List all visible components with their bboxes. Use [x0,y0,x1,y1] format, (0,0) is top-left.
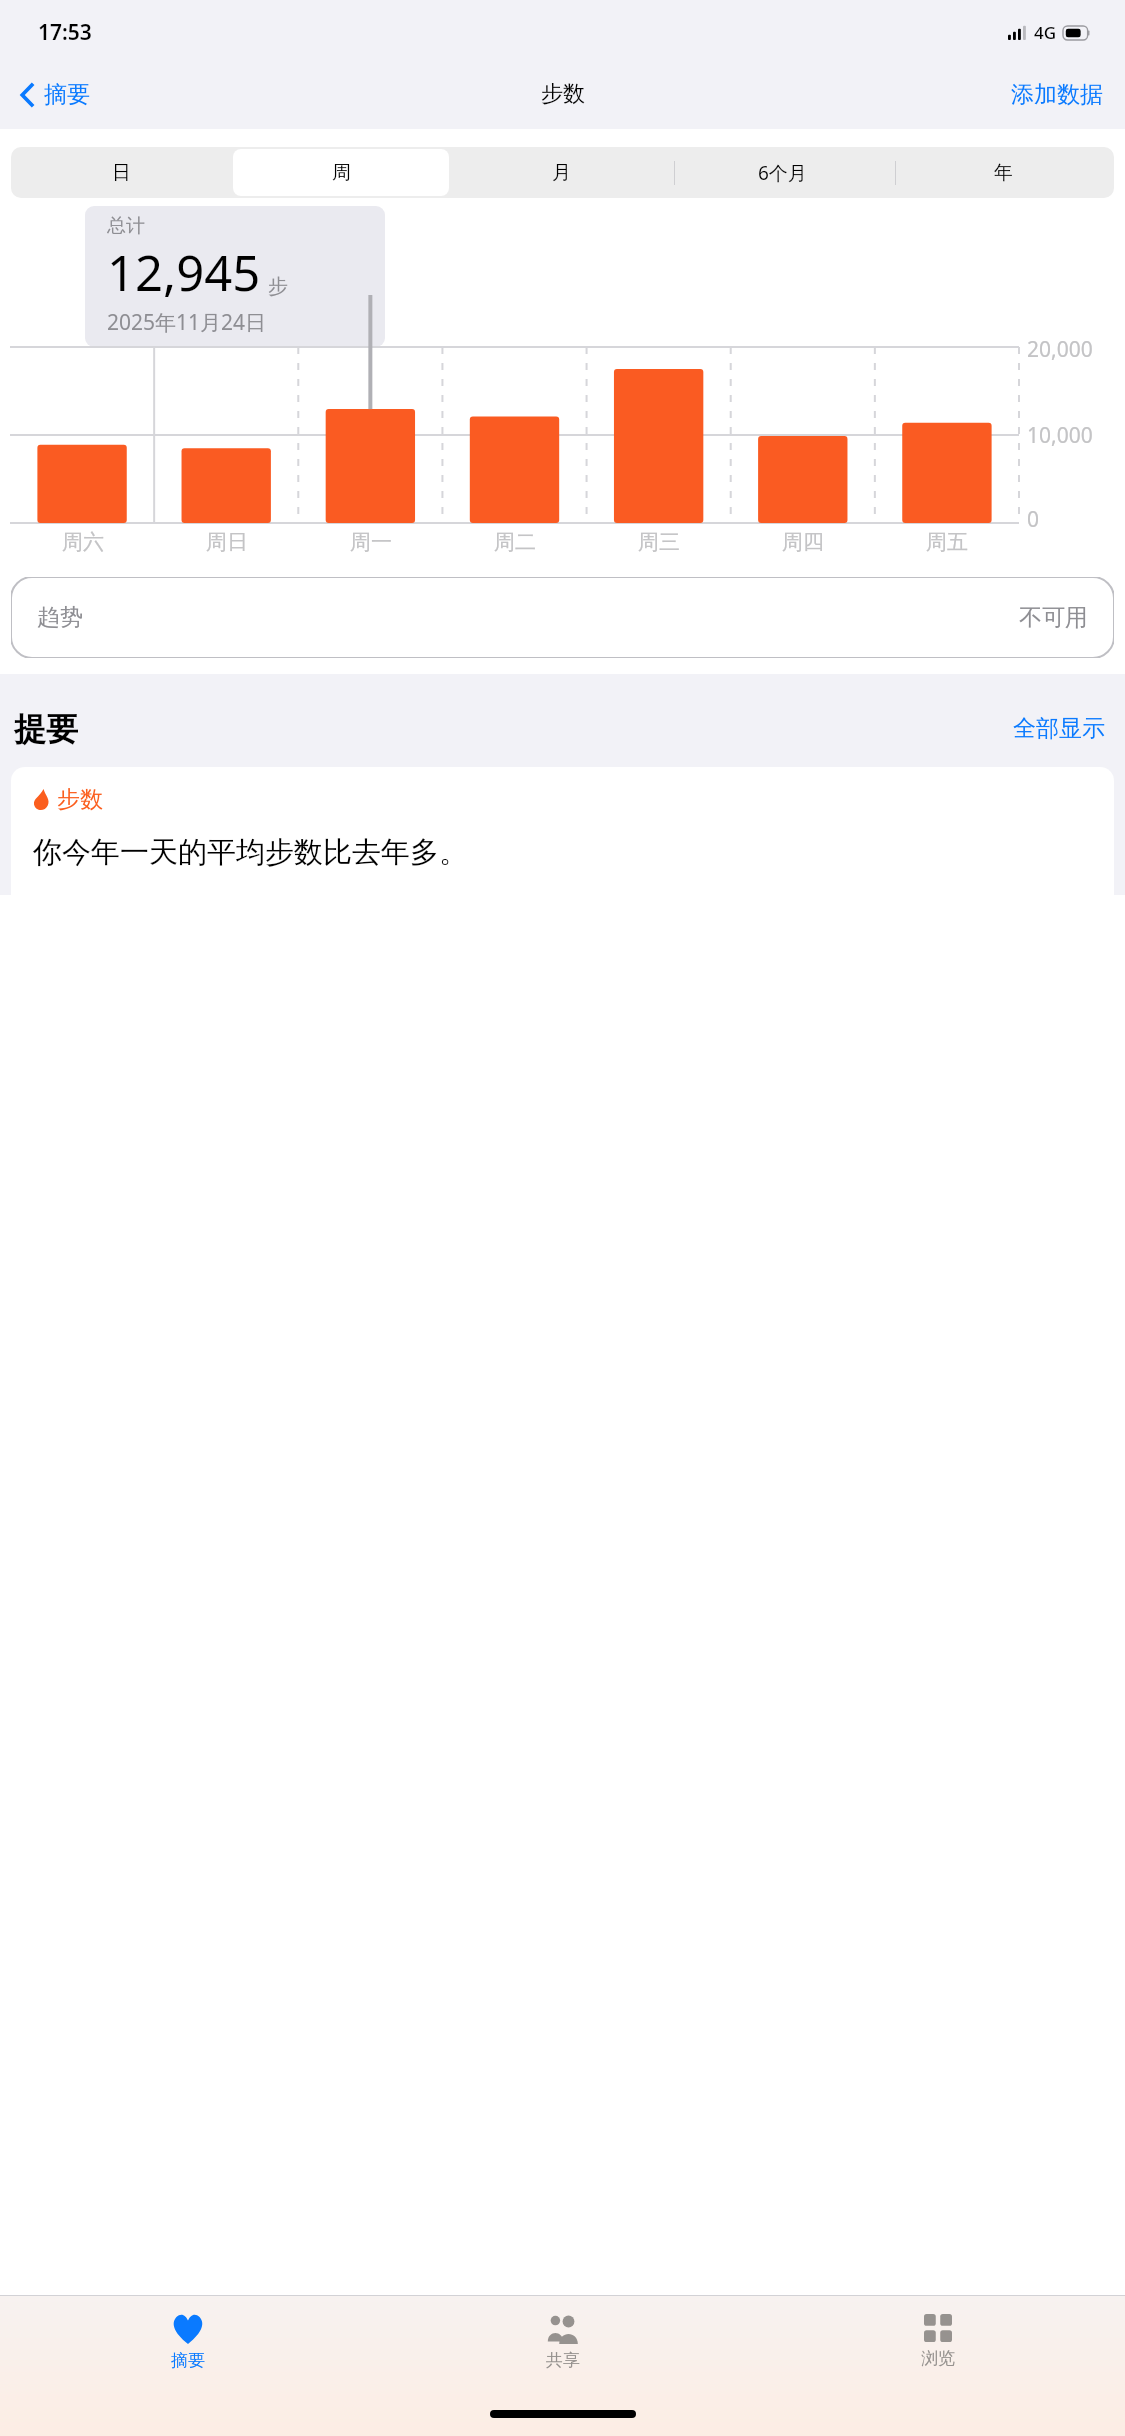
staticText: 周 [332,161,351,185]
staticText: 周三 [638,529,680,555]
button[interactable]: 趋势 [11,577,1114,658]
staticText: 20,000 [1027,335,1093,364]
staticText: 年 [994,161,1013,185]
staticText: 步 [268,274,288,299]
button[interactable]: 步数 [11,767,1114,895]
staticText: 浏览 [921,2348,955,2369]
button[interactable]: 6个月 [674,149,891,196]
staticText: 6个月 [758,160,807,186]
staticText: 摘要 [171,2350,205,2371]
staticText: 周六 [62,529,104,555]
button[interactable]: 摘要 [0,2310,375,2375]
staticText: 0 [1027,505,1040,534]
staticText: 趋势 [37,603,83,632]
button[interactable]: 浏览 [750,2310,1125,2373]
button[interactable]: 摘要 [0,74,102,115]
staticText: 不可用 [1019,603,1088,632]
staticText: 17:53 [38,18,92,47]
button[interactable]: 添加数据 [989,72,1125,117]
staticText: 4G [1034,21,1057,44]
staticText: 10,000 [1027,421,1093,450]
button[interactable]: 共享 [375,2310,750,2375]
staticText: 摘要 [44,80,90,109]
button[interactable]: 月 [453,149,670,196]
staticText: 步数 [541,80,585,108]
staticText: 周二 [494,529,536,555]
staticText: 日 [112,161,131,185]
button[interactable]: 全部显示 [1007,708,1111,749]
button[interactable]: 周 [233,149,449,196]
staticText: 你今年一天的平均步数比去年多。 [33,834,468,871]
staticText: 总计 [107,214,145,238]
staticText: 步数 [57,785,103,814]
staticText: 周四 [782,529,824,555]
staticText: 2025年11月24日 [107,308,267,337]
staticText: 12,945 [107,239,261,306]
staticText: 周一 [350,529,392,555]
button[interactable]: 年 [895,149,1112,196]
staticText: 周五 [926,529,968,555]
staticText: 提要 [14,709,78,749]
staticText: 月 [552,161,571,185]
staticText: 周日 [206,529,248,555]
staticText: 共享 [546,2350,580,2371]
button[interactable]: 日 [13,149,229,196]
